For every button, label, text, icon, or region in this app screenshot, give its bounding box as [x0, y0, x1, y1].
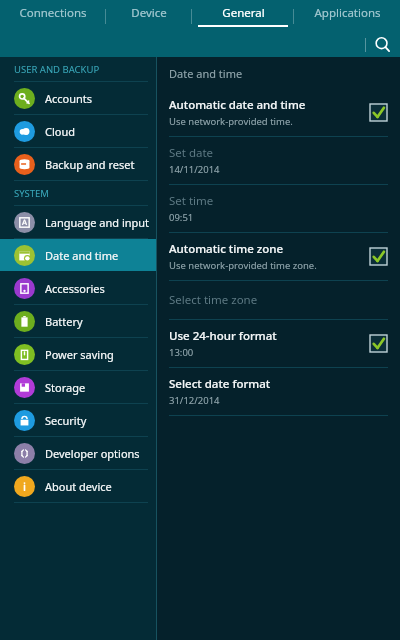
- staticText: Automatic time zone: [169, 241, 284, 257]
- staticText: About device: [45, 479, 112, 494]
- staticText: Automatic date and time: [169, 97, 306, 113]
- button[interactable]: General: [192, 0, 293, 32]
- staticText: Power saving: [45, 347, 114, 362]
- button[interactable]: Power saving: [0, 338, 156, 370]
- button[interactable]: Use 24-hour format: [157, 320, 400, 367]
- staticText: Date and time: [169, 66, 243, 81]
- staticText: Use 24-hour format: [169, 328, 277, 344]
- staticText: Battery: [45, 314, 83, 329]
- staticText: USER AND BACKUP: [14, 63, 100, 76]
- staticText: Use network-provided time zone.: [169, 259, 317, 272]
- staticText: 14/11/2014: [169, 163, 220, 176]
- button[interactable]: Set date: [157, 137, 400, 184]
- button[interactable]: Search: [366, 32, 400, 57]
- button[interactable]: Set time: [157, 185, 400, 232]
- staticText: Language and input: [45, 215, 150, 230]
- staticText: SYSTEM: [14, 187, 49, 200]
- button[interactable]: Select time zone: [157, 281, 400, 319]
- button[interactable]: Developer options: [0, 437, 156, 469]
- button[interactable]: Backup and reset: [0, 148, 156, 180]
- button[interactable]: Connections: [0, 0, 105, 32]
- staticText: Cloud: [45, 124, 76, 139]
- button[interactable]: Device: [106, 0, 191, 32]
- staticText: Use network-provided time.: [169, 115, 293, 128]
- button[interactable]: Toggle checkbox: [369, 334, 388, 353]
- staticText: Backup and reset: [45, 157, 135, 172]
- button[interactable]: Language and input: [0, 206, 156, 238]
- button[interactable]: Toggle checkbox: [369, 103, 388, 122]
- button[interactable]: Accounts: [0, 82, 156, 114]
- staticText: Storage: [45, 380, 86, 395]
- staticText: Set time: [169, 193, 214, 209]
- staticText: Date and time: [45, 248, 119, 263]
- staticText: 09:51: [169, 211, 194, 224]
- button[interactable]: Storage: [0, 371, 156, 403]
- staticText: General: [222, 5, 265, 21]
- button[interactable]: Security: [0, 404, 156, 436]
- button[interactable]: Automatic date and time: [157, 89, 400, 136]
- staticText: Applications: [314, 5, 381, 21]
- button[interactable]: Accessories: [0, 272, 156, 304]
- button[interactable]: Toggle checkbox: [369, 247, 388, 266]
- button[interactable]: Applications: [294, 0, 400, 32]
- staticText: Accounts: [45, 91, 93, 106]
- staticText: Connections: [19, 5, 87, 21]
- staticText: Select time zone: [169, 292, 258, 308]
- button[interactable]: Cloud: [0, 115, 156, 147]
- staticText: Accessories: [45, 281, 105, 296]
- button[interactable]: Date and time: [0, 239, 156, 271]
- staticText: 31/12/2014: [169, 394, 220, 407]
- button[interactable]: Automatic time zone: [157, 233, 400, 280]
- staticText: Developer options: [45, 446, 140, 461]
- staticText: Set date: [169, 145, 214, 161]
- staticText: 13:00: [169, 346, 194, 359]
- staticText: Security: [45, 413, 87, 428]
- staticText: Device: [131, 5, 167, 21]
- button[interactable]: About device: [0, 470, 156, 502]
- staticText: Select date format: [169, 376, 271, 392]
- button[interactable]: Select date format: [157, 368, 400, 415]
- button[interactable]: Battery: [0, 305, 156, 337]
